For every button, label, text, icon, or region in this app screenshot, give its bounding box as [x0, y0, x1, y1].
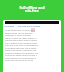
staticText: in culpa qui officia deserunt mollit a [5, 54, 37, 57]
staticText: adipiscing elit, sed do eiusmod [5, 32, 33, 35]
staticText: occaecat cupidatat non proident, sunt [5, 52, 39, 55]
staticText: in voluptate velit esse cillum dolore [5, 47, 37, 50]
staticText: aliqua. Ut enim ad minim veniam, q [5, 37, 37, 40]
staticText: incididunt ut labore et dolore [5, 34, 31, 37]
staticText: nisi ut aliquip ex ea commodo conse [5, 42, 38, 45]
staticText: nostrud exercitation ullamco laboris [5, 39, 37, 42]
staticText: fugiat nulla pariatur. Excepteur sint [5, 49, 37, 52]
staticText: Duis aute irure dolor in reprehenderit [5, 44, 39, 47]
staticText: Wikipedia The Free Encyclopedia [4, 25, 41, 28]
staticText: ads-free [0, 8, 64, 13]
staticText: Lorem ipsum dolor sit amet, co [5, 29, 33, 32]
staticText: Full offline and [0, 5, 64, 10]
staticText: omnis iste natus error sit volupt [5, 59, 34, 62]
staticText: id est laborum sed ut perspiciatis u [5, 57, 37, 60]
